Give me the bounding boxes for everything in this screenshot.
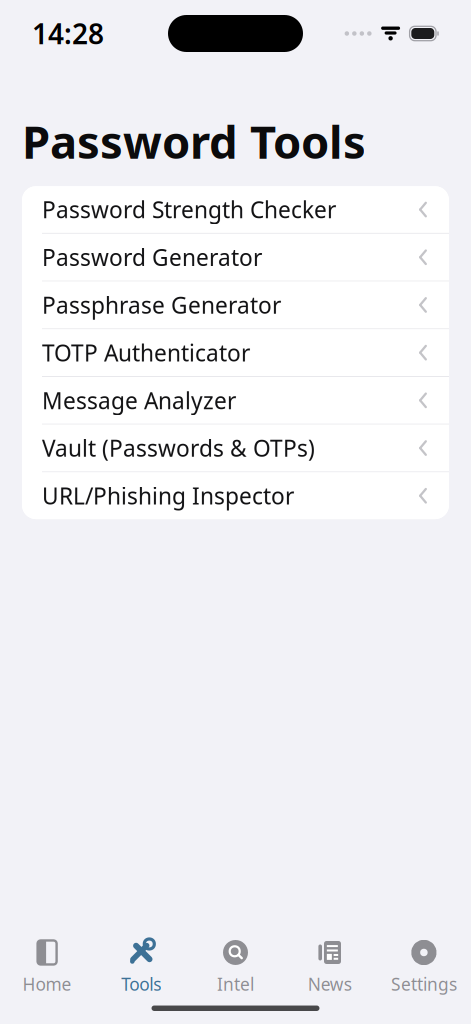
button[interactable]: Password Generator — [22, 234, 449, 281]
staticText: News — [308, 972, 352, 995]
button[interactable]: Passphrase Generator — [22, 282, 449, 328]
staticText: TOTP Authenticator — [42, 338, 250, 368]
button[interactable]: Password Strength Checker — [22, 186, 449, 233]
button[interactable]: News — [283, 933, 377, 999]
staticText: Password Tools — [22, 111, 366, 171]
staticText: Intel — [217, 972, 254, 995]
staticText: Home — [23, 972, 72, 995]
staticText: Vault (Passwords & OTPs) — [42, 433, 315, 463]
staticText: Password Strength Checker — [42, 194, 336, 225]
staticText: Password Generator — [42, 242, 262, 272]
staticText: URL/Phishing Inspector — [42, 481, 294, 511]
staticText: Tools — [121, 972, 161, 995]
staticText: Settings — [391, 972, 457, 995]
button[interactable]: Vault (Passwords & OTPs) — [22, 425, 449, 471]
button[interactable]: Tools — [94, 933, 188, 999]
button[interactable]: Home — [0, 933, 94, 999]
button[interactable]: Intel — [188, 933, 283, 999]
button[interactable]: Settings — [377, 933, 471, 999]
button[interactable]: URL/Phishing Inspector — [22, 472, 449, 519]
staticText: Message Analyzer — [42, 385, 236, 415]
button[interactable]: Message Analyzer — [22, 377, 449, 424]
staticText: 14:28 — [32, 15, 104, 52]
staticText: Passphrase Generator — [42, 290, 281, 320]
button[interactable]: TOTP Authenticator — [22, 329, 449, 376]
